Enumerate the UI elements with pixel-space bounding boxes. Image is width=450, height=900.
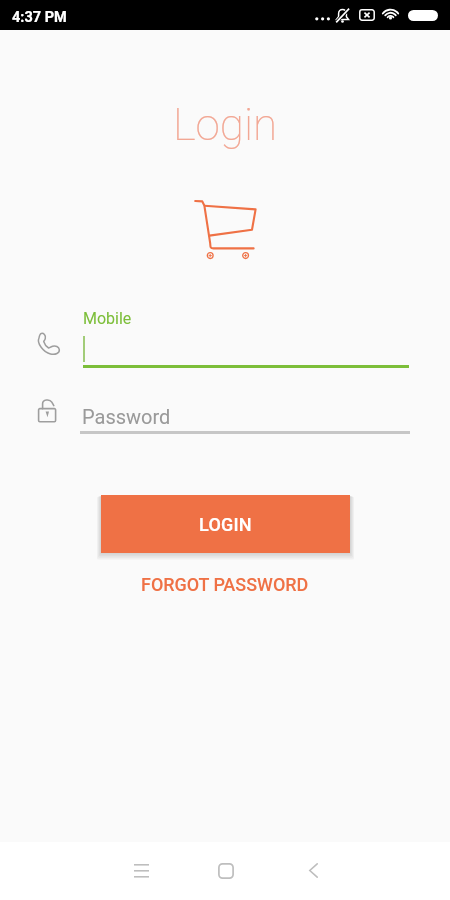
staticText: Login — [0, 99, 450, 151]
button[interactable]: Recents — [117, 847, 165, 895]
staticText: Mobile — [83, 309, 132, 328]
staticText: LOGIN — [199, 514, 252, 535]
button[interactable]: FORGOT PASSWORD — [130, 568, 320, 600]
button[interactable]: Password input — [30, 392, 415, 438]
staticText: FORGOT PASSWORD — [141, 574, 309, 595]
staticText: Password — [82, 405, 171, 428]
staticText: 4:37 PM — [12, 9, 67, 26]
button[interactable]: LOGIN — [101, 495, 350, 553]
button[interactable]: Back — [289, 846, 337, 894]
button[interactable]: Home — [202, 847, 250, 895]
button[interactable]: Mobile number input — [30, 300, 415, 370]
